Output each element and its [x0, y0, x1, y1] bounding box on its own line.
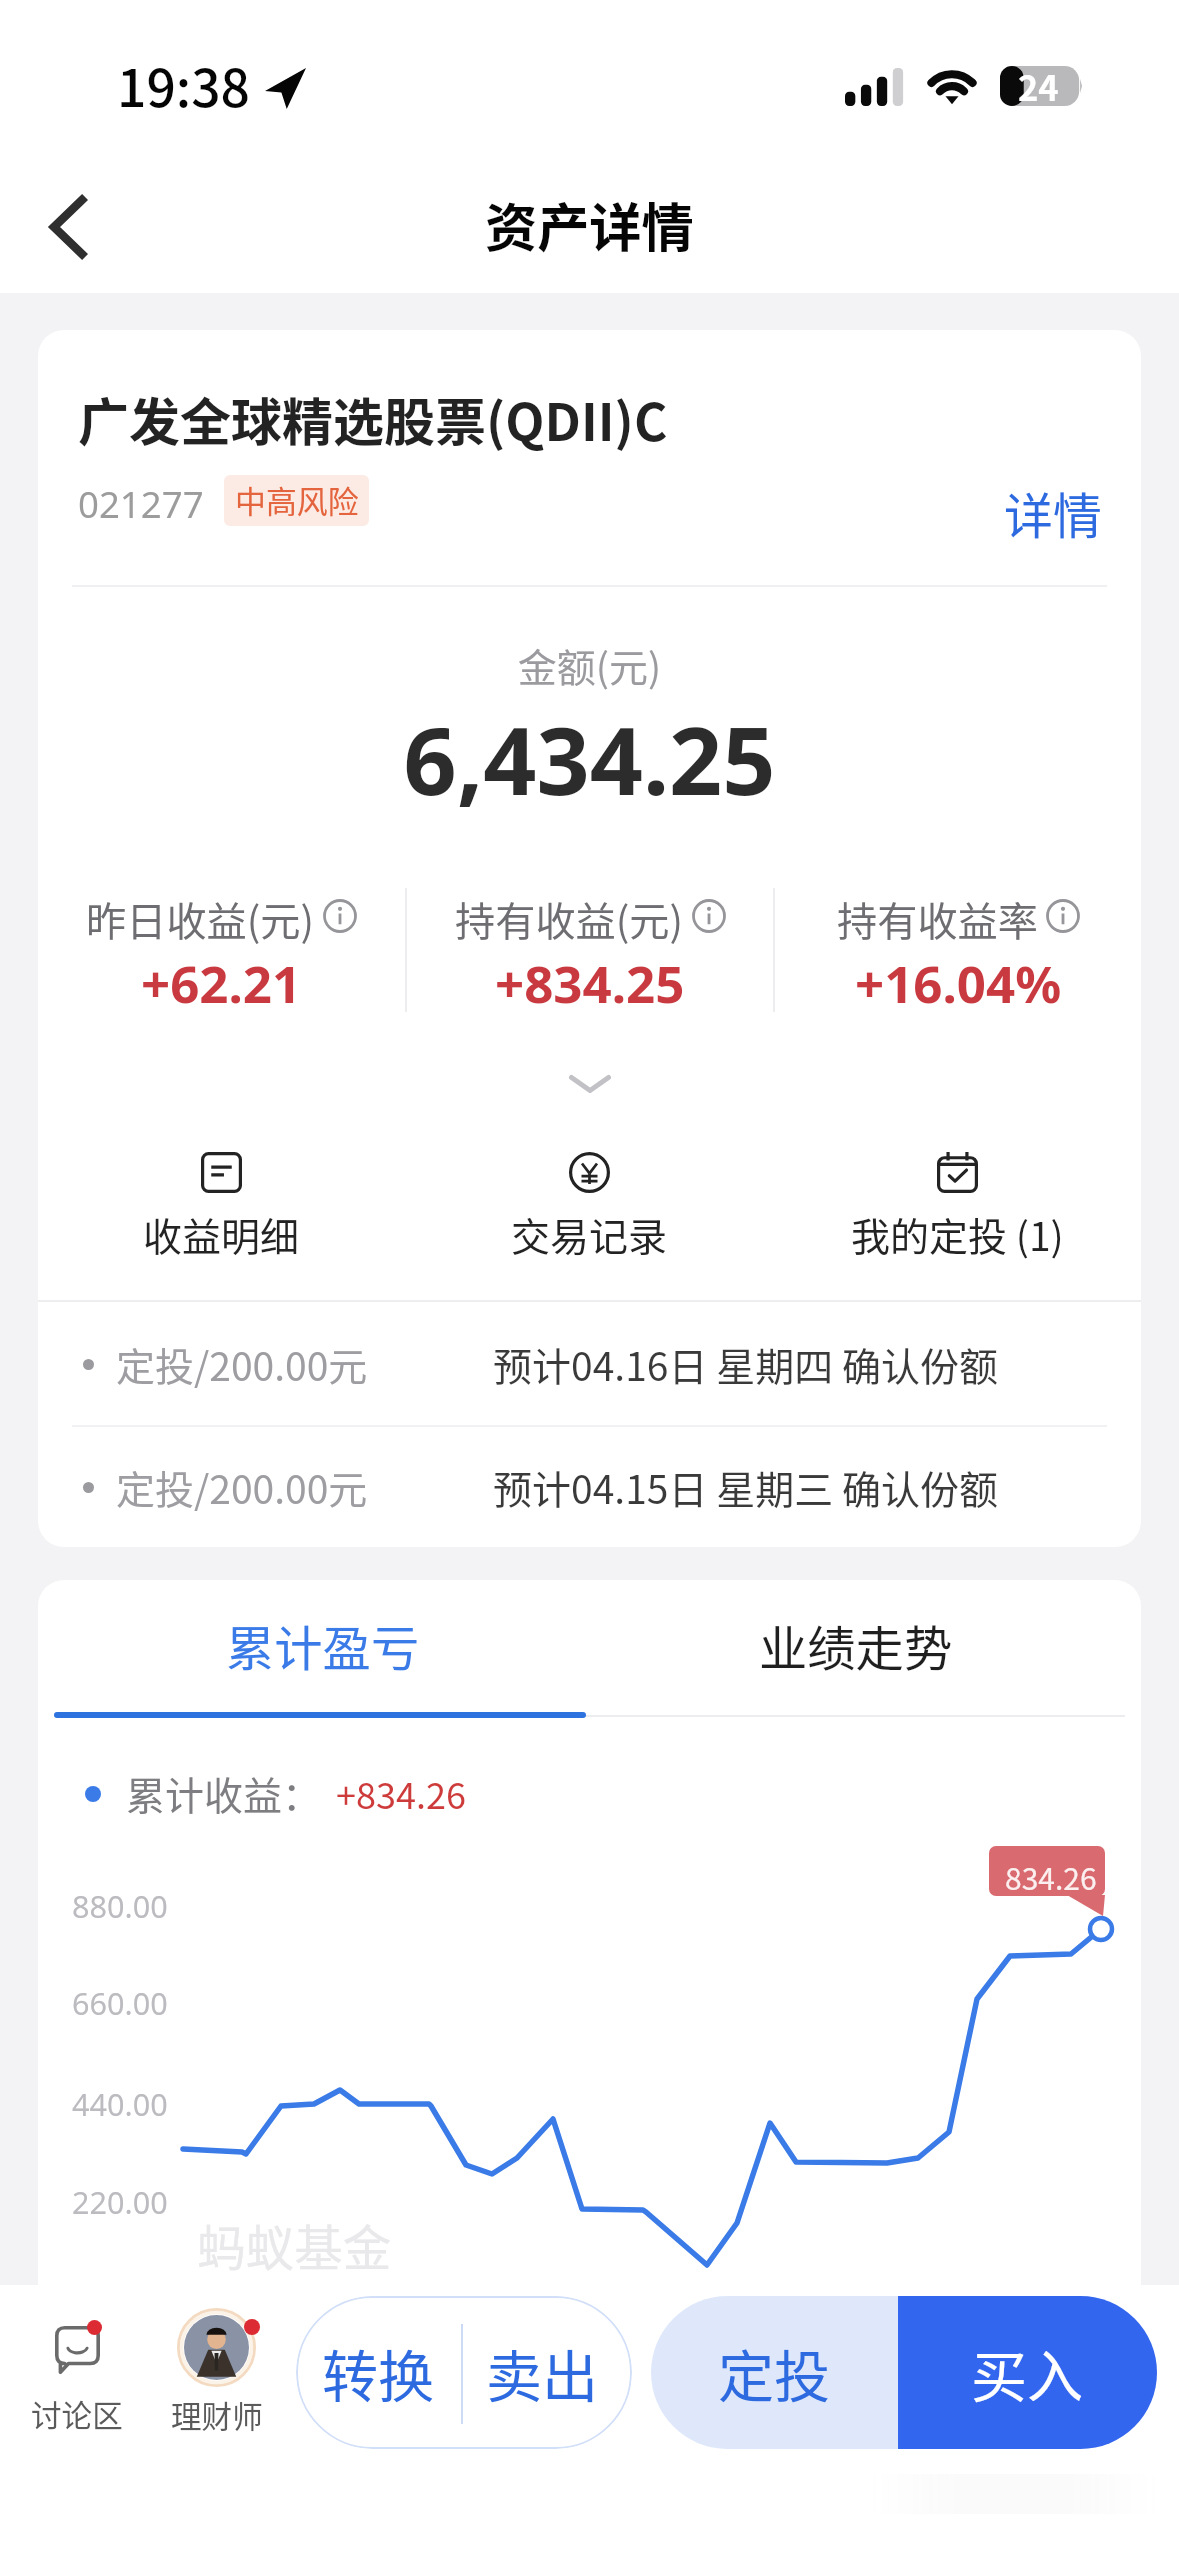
staticText: 蚂蚁基金: [197, 2210, 392, 2280]
staticText: 我的定投 (1): [851, 1206, 1064, 1262]
button[interactable]: 讨论区: [22, 2316, 132, 2441]
staticText: 累计收益：: [126, 1765, 322, 1821]
staticText: 累计盈亏: [226, 1610, 420, 1680]
staticText: 220.00: [72, 2181, 168, 2223]
staticText: 转换: [322, 2332, 435, 2413]
button[interactable]: 详情: [981, 477, 1124, 541]
button[interactable]: 收益明细: [38, 1152, 405, 1262]
staticText: 理财师: [171, 2393, 263, 2437]
staticText: 详情: [1004, 477, 1102, 541]
staticText: +834.26: [336, 1767, 466, 1819]
staticText: 6,434.25: [38, 696, 1141, 823]
button[interactable]: 理财师: [165, 2305, 275, 2440]
staticText: 中高风险: [235, 477, 359, 522]
staticText: 定投: [718, 2332, 831, 2413]
staticText: 19:38: [117, 47, 251, 122]
staticText: 收益明细: [143, 1206, 300, 1262]
staticText: 预计04.16日 星期四 确认份额: [493, 1336, 998, 1392]
staticText: 24: [1018, 61, 1059, 101]
staticText: 业绩走势: [759, 1610, 953, 1680]
staticText: 021277: [78, 479, 204, 529]
staticText: 预计04.15日 星期三 确认份额: [493, 1459, 998, 1515]
button[interactable]: 我的定投 (1): [773, 1152, 1141, 1262]
staticText: +834.25: [495, 948, 685, 1017]
button[interactable]: 交易记录: [405, 1152, 773, 1262]
button[interactable]: 持有收益率: [775, 880, 1141, 1020]
button[interactable]: 卖出: [463, 2296, 622, 2449]
staticText: 交易记录: [511, 1206, 668, 1262]
button[interactable]: 定投: [651, 2296, 898, 2449]
staticText: +16.04%: [855, 948, 1062, 1017]
button[interactable]: 转换: [296, 2296, 461, 2449]
staticText: 昨日收益(元): [86, 889, 315, 947]
staticText: 880.00: [72, 1885, 168, 1927]
staticText: 持有收益率: [837, 889, 1038, 947]
staticText: 广发全球精选股票(QDII)C: [78, 382, 668, 456]
staticText: +62.21: [141, 948, 302, 1017]
button[interactable]: 累计盈亏: [43, 1580, 603, 1713]
button[interactable]: Back: [22, 181, 114, 273]
staticText: 834.26: [1005, 1855, 1097, 1898]
button[interactable]: 买入: [898, 2296, 1157, 2449]
button[interactable]: 定投/200.00元: [38, 1437, 1141, 1537]
staticText: 定投/200.00元: [116, 1336, 368, 1392]
staticText: 资产详情: [485, 186, 694, 262]
staticText: 440.00: [72, 2083, 168, 2125]
button[interactable]: 定投/200.00元: [38, 1314, 1141, 1414]
button[interactable]: Expand: [38, 1055, 1141, 1111]
staticText: 讨论区: [31, 2392, 123, 2436]
staticText: 持有收益(元): [455, 889, 684, 947]
staticText: 买入: [971, 2332, 1084, 2413]
staticText: 定投/200.00元: [116, 1459, 368, 1515]
staticText: 660.00: [72, 1982, 168, 2024]
button[interactable]: 业绩走势: [576, 1580, 1136, 1713]
staticText: 金额(元): [38, 637, 1141, 693]
button[interactable]: 昨日收益(元): [38, 880, 405, 1020]
staticText: 卖出: [486, 2332, 599, 2413]
button[interactable]: 持有收益(元): [407, 880, 773, 1020]
